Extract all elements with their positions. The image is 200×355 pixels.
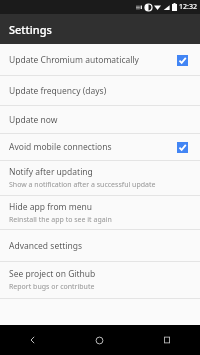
- staticText: Update Chromium automatically: [9, 54, 139, 66]
- button[interactable]: Update now: [0, 106, 200, 133]
- button[interactable]: Checked: [171, 49, 193, 71]
- button[interactable]: Notify after updating: [0, 161, 200, 195]
- button[interactable]: Update frequency (days): [0, 76, 200, 105]
- staticText: Notify after updating: [9, 166, 93, 178]
- button[interactable]: Avoid mobile connections: [0, 134, 200, 160]
- button[interactable]: Hide app from menu: [0, 196, 200, 229]
- button[interactable]: Update Chromium automatically: [0, 44, 200, 75]
- staticText: Reinstall the app to see it again: [9, 215, 112, 225]
- staticText: Report bugs or contribute: [9, 282, 95, 292]
- button[interactable]: Checked: [171, 136, 193, 158]
- button[interactable]: See project on Github: [0, 262, 200, 298]
- staticText: Avoid mobile connections: [9, 141, 112, 153]
- staticText: 12:32: [179, 2, 197, 12]
- staticText: Update frequency (days): [9, 85, 107, 97]
- staticText: Settings: [9, 22, 52, 37]
- staticText: Show a notification after a successful u…: [9, 180, 156, 190]
- button[interactable]: Recent apps: [133, 325, 200, 355]
- staticText: See project on Github: [9, 268, 96, 280]
- button[interactable]: Advanced settings: [0, 230, 200, 261]
- staticText: Advanced settings: [9, 240, 83, 252]
- button[interactable]: Back: [0, 325, 66, 355]
- button[interactable]: Home: [66, 325, 133, 355]
- staticText: Hide app from menu: [9, 201, 92, 213]
- staticText: Update now: [9, 114, 58, 126]
